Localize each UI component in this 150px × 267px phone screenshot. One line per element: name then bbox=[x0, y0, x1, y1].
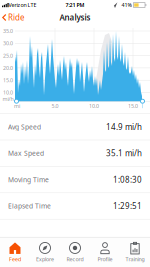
staticText: 41% bbox=[121, 1, 131, 9]
button[interactable]: Explore bbox=[30, 237, 60, 267]
staticText: mi bbox=[14, 102, 20, 110]
staticText: Avg Speed bbox=[8, 122, 41, 131]
staticText: 1:29:51 bbox=[113, 201, 142, 211]
staticText: Training bbox=[125, 256, 144, 263]
button[interactable]: Ride bbox=[2, 9, 25, 26]
staticText: Moving Time bbox=[8, 175, 49, 184]
button[interactable]: Profile bbox=[90, 237, 120, 267]
staticText: Feed bbox=[9, 256, 21, 263]
staticText: Verizon LTE bbox=[8, 1, 36, 9]
staticText: 35.0 bbox=[3, 27, 13, 35]
staticText: 10.0 bbox=[3, 89, 13, 96]
staticText: 25.0 bbox=[3, 52, 13, 59]
button[interactable]: Record bbox=[60, 237, 90, 267]
staticText: 35.1 mi/h bbox=[106, 148, 142, 158]
staticText: Record bbox=[66, 256, 83, 263]
staticText: 20.0 bbox=[3, 64, 13, 71]
staticText: Max Speed bbox=[8, 149, 44, 158]
staticText: 10.0 bbox=[89, 102, 99, 110]
staticText: Ride bbox=[8, 12, 25, 23]
button[interactable]: Feed bbox=[0, 237, 30, 267]
staticText: 15.0 bbox=[128, 102, 138, 110]
staticText: 15.0 bbox=[3, 77, 13, 84]
staticText: 1:08:30 bbox=[113, 174, 142, 185]
staticText: 14.9 mi/h bbox=[106, 121, 142, 132]
button[interactable]: Training bbox=[120, 237, 150, 267]
staticText: Explore bbox=[36, 256, 54, 263]
staticText: mi/h bbox=[2, 95, 13, 103]
staticText: 5.0 bbox=[51, 102, 58, 110]
staticText: Elapsed Time bbox=[8, 202, 51, 210]
staticText: Profile bbox=[97, 256, 112, 263]
staticText: 30.0 bbox=[3, 40, 13, 47]
staticText: Analysis bbox=[59, 12, 90, 23]
staticText: 7:21 PM bbox=[65, 1, 84, 9]
